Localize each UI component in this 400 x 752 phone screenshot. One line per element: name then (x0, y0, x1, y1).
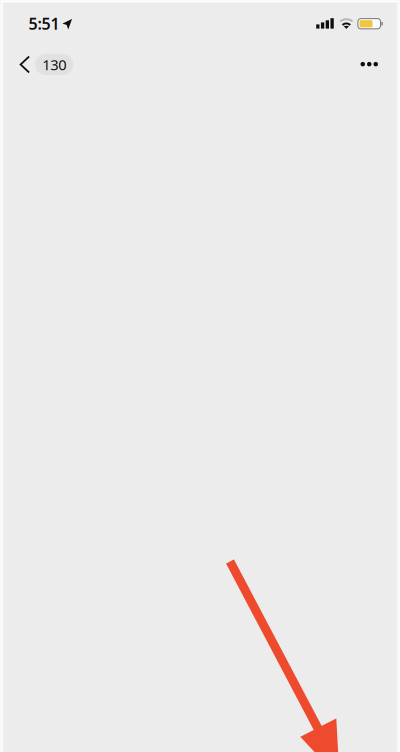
button[interactable]: 130 (12, 46, 82, 83)
staticText: 130 (42, 55, 66, 74)
button[interactable]: More options (346, 49, 392, 79)
staticText: 5:51 (28, 13, 59, 34)
